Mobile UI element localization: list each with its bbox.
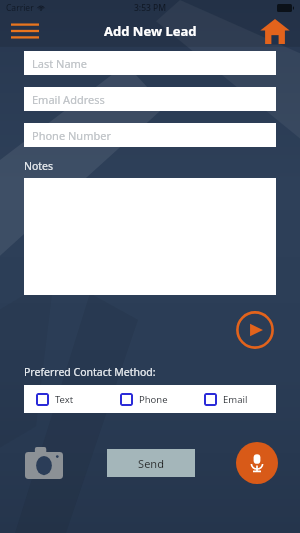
button[interactable]: Play recording (236, 311, 274, 349)
button[interactable]: Record audio (236, 442, 278, 484)
button[interactable]: Phone Number (24, 123, 276, 147)
staticText: Last Name (32, 56, 88, 71)
staticText: Phone Number (32, 128, 111, 143)
button[interactable]: Phone (108, 385, 192, 413)
staticText: Add New Lead (104, 22, 197, 40)
staticText: Text (55, 393, 74, 406)
button[interactable]: Text (24, 385, 108, 413)
button[interactable]: Email Address (24, 87, 276, 111)
staticText: Phone (139, 393, 168, 406)
staticText: Email Address (32, 92, 105, 107)
staticText: 3:53 PM (134, 2, 167, 14)
staticText: Preferred Contact Method: (24, 365, 156, 379)
staticText: Notes (24, 159, 54, 173)
staticText: Carrier (6, 2, 34, 14)
button[interactable]: Email (192, 385, 276, 413)
staticText: Send (138, 456, 164, 471)
staticText: Email (223, 393, 248, 406)
button[interactable]: Home (258, 15, 292, 47)
button[interactable]: Send (107, 449, 195, 477)
button[interactable]: Last Name (24, 51, 276, 75)
button[interactable]: Menu (8, 17, 42, 45)
button[interactable]: Take photo (22, 441, 66, 485)
